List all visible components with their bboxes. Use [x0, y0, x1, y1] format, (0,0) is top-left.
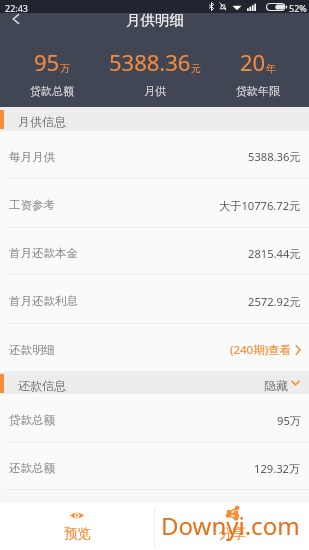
- button[interactable]: 工资参考: [0, 179, 309, 227]
- staticText: 2815.44元: [248, 246, 301, 261]
- staticText: 万: [60, 62, 70, 75]
- staticText: 元: [191, 62, 201, 75]
- staticText: 月供: [144, 84, 166, 98]
- staticText: 每月月供: [9, 150, 55, 164]
- staticText: 工资参考: [9, 198, 55, 212]
- staticText: Downyi.com: [161, 509, 300, 542]
- staticText: 大于10776.72元: [219, 198, 301, 213]
- staticText: 22:43: [5, 2, 29, 14]
- button[interactable]: 还款明细: [0, 324, 309, 371]
- staticText: 预览: [64, 525, 91, 542]
- staticText: 分享: [219, 525, 246, 542]
- staticText: 贷款总额: [30, 84, 74, 98]
- staticText: 隐藏: [264, 378, 288, 393]
- staticText: 95: [34, 47, 60, 77]
- button[interactable]: 预览: [0, 503, 154, 550]
- staticText: 还款总额: [9, 461, 55, 475]
- staticText: 5388.36: [109, 47, 191, 77]
- staticText: (240期)查看: [230, 342, 292, 358]
- button[interactable]: 还款总额: [0, 443, 309, 489]
- staticText: 20: [240, 47, 266, 77]
- staticText: 129.32万: [254, 461, 301, 476]
- staticText: 还款明细: [9, 343, 55, 357]
- staticText: 首月还款利息: [9, 294, 78, 308]
- button[interactable]: 首月还款本金: [0, 228, 309, 274]
- staticText: 首月还款本金: [9, 246, 78, 260]
- button[interactable]: 隐藏: [264, 372, 300, 394]
- staticText: 还款信息: [18, 378, 66, 393]
- staticText: 贷款年限: [236, 84, 280, 98]
- button[interactable]: 首月还款利息: [0, 275, 309, 323]
- staticText: 月供明细: [126, 11, 184, 29]
- staticText: 年: [266, 62, 276, 75]
- staticText: 52%: [289, 2, 307, 14]
- button[interactable]: Back: [4, 10, 28, 27]
- button[interactable]: 每月月供: [0, 131, 309, 178]
- staticText: 2572.92元: [248, 294, 301, 309]
- staticText: 贷款总额: [9, 413, 55, 427]
- button[interactable]: 分享: [155, 503, 309, 550]
- button[interactable]: 贷款总额: [0, 394, 309, 442]
- staticText: 5388.36元: [248, 149, 301, 164]
- staticText: 95万: [277, 413, 301, 428]
- staticText: 月供信息: [18, 114, 66, 129]
